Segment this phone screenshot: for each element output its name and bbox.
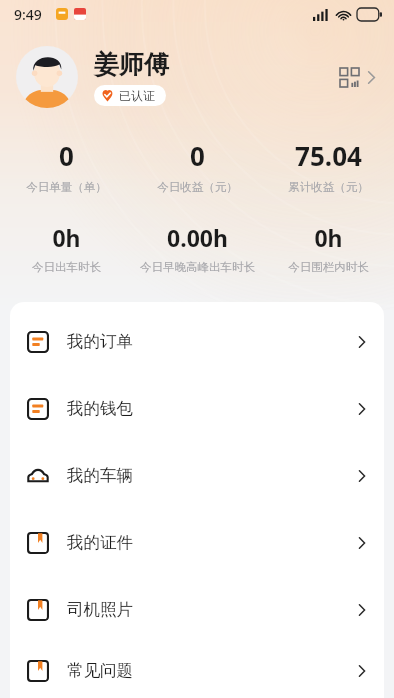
staticText: 我的钱包 xyxy=(67,398,133,419)
staticText: 0.00h xyxy=(167,222,228,253)
staticText: 75.04 xyxy=(295,138,362,173)
staticText: 累计收益（元） xyxy=(288,180,369,194)
staticText: 姜师傅 xyxy=(94,49,169,80)
button[interactable]: 我的订单 xyxy=(10,308,384,375)
button[interactable]: 0.00h xyxy=(132,222,263,274)
staticText: 今日早晚高峰出车时长 xyxy=(140,260,255,274)
button[interactable]: 0 xyxy=(0,138,132,194)
staticText: 9:49 xyxy=(14,5,42,24)
staticText: 0h xyxy=(314,222,343,253)
button[interactable]: 我的车辆 xyxy=(10,442,384,509)
button[interactable]: 司机照片 xyxy=(10,576,384,643)
button[interactable]: 0h xyxy=(0,222,132,274)
staticText: 今日围栏内时长 xyxy=(288,260,369,274)
staticText: 0 xyxy=(59,138,74,173)
staticText: 我的车辆 xyxy=(67,465,133,486)
button[interactable]: 常见问题 xyxy=(10,643,384,698)
button[interactable]: 75.04 xyxy=(263,138,394,194)
button[interactable]: 我的证件 xyxy=(10,509,384,576)
staticText: 已认证 xyxy=(119,88,155,103)
staticText: 0 xyxy=(190,138,205,173)
staticText: 我的证件 xyxy=(67,532,133,553)
staticText: 今日出车时长 xyxy=(32,260,101,274)
staticText: 0h xyxy=(52,222,81,253)
staticText: 司机照片 xyxy=(67,599,133,620)
staticText: 今日收益（元） xyxy=(157,180,238,194)
button[interactable]: 扫一扫二维码 xyxy=(336,62,380,93)
button[interactable]: 0 xyxy=(132,138,263,194)
button[interactable]: 已认证 xyxy=(94,85,166,106)
staticText: 常见问题 xyxy=(67,660,133,681)
button[interactable]: 我的钱包 xyxy=(10,375,384,442)
button[interactable]: 0h xyxy=(263,222,394,274)
staticText: 今日单量（单） xyxy=(26,180,107,194)
staticText: 我的订单 xyxy=(67,331,133,352)
